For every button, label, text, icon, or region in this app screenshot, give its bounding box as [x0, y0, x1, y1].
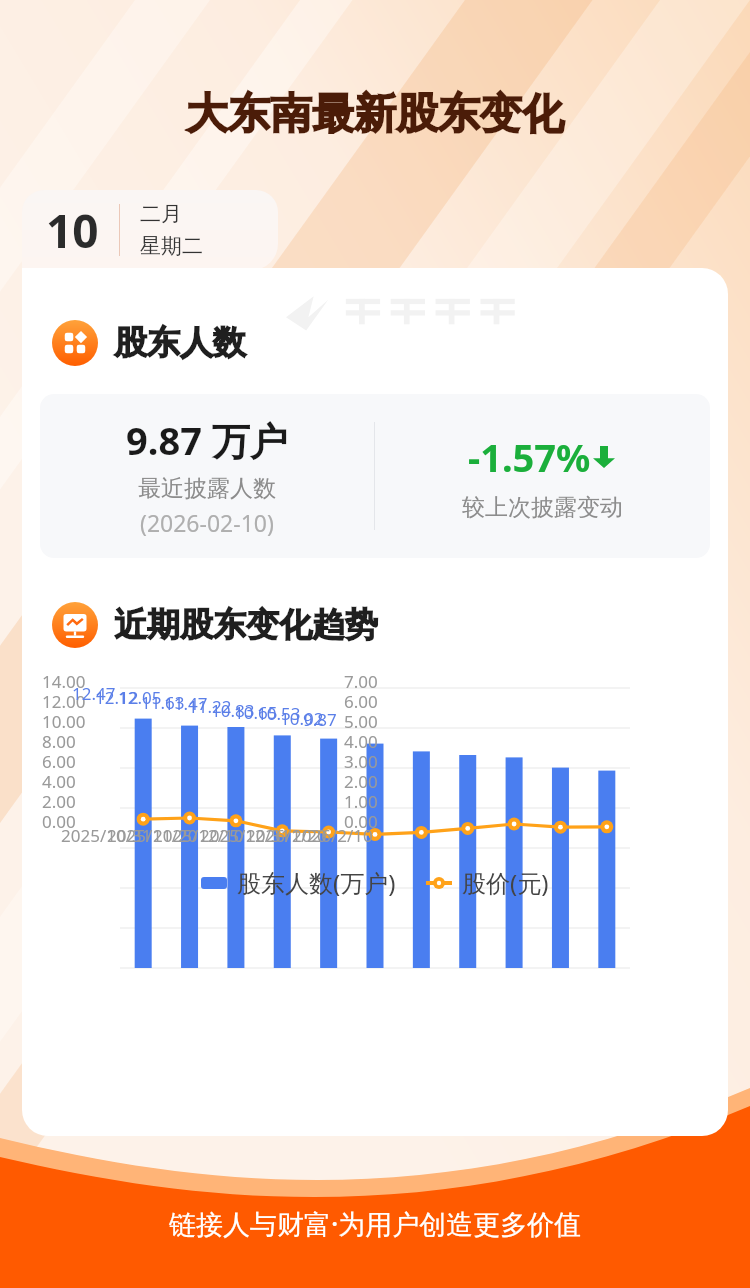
staticText: 股东人数: [114, 322, 246, 364]
staticText: 4.00: [344, 730, 378, 753]
staticText: 2025/10/31: [61, 824, 152, 847]
staticText: 11.47: [164, 692, 208, 715]
staticText: 10: [46, 199, 99, 262]
staticText: 10.65: [234, 701, 278, 724]
staticText: -1.57%: [468, 431, 591, 483]
staticText: 14.00: [42, 670, 86, 693]
staticText: 星期二: [140, 233, 203, 259]
staticText: 股价(元): [462, 866, 549, 899]
staticText: 2025/12/10: [153, 824, 244, 847]
staticText: 较上次披露变动: [462, 493, 623, 522]
staticText: 9.87 万户: [126, 414, 288, 466]
staticText: 9.87: [303, 708, 337, 731]
staticText: 股东人数(万户): [237, 866, 396, 899]
staticText: 0.00: [42, 810, 76, 833]
staticText: 12.47: [72, 682, 116, 705]
staticText: 6.00: [344, 690, 378, 713]
button[interactable]: 股东人数: [52, 320, 246, 366]
staticText: 1.00: [344, 790, 378, 813]
staticText: 11.63: [141, 691, 185, 714]
staticText: 10.83: [211, 699, 255, 722]
staticText: 2.00: [344, 770, 378, 793]
staticText: 链接人与财富·为用户创造更多价值: [169, 1205, 582, 1242]
staticText: 2026/1/20: [246, 824, 327, 847]
staticText: 2025/12/31: [200, 824, 291, 847]
staticText: 2026/2/10: [292, 824, 373, 847]
staticText: 10.53: [257, 702, 301, 725]
staticText: 2.00: [42, 790, 76, 813]
button[interactable]: 9.87 万户: [40, 394, 710, 558]
staticText: 11.22: [188, 695, 232, 718]
staticText: 4.00: [42, 770, 76, 793]
staticText: 近期股东变化趋势: [114, 604, 378, 646]
staticText: 10.00: [42, 710, 86, 733]
staticText: 0.00: [344, 810, 378, 833]
staticText: 12.00: [42, 690, 86, 713]
staticText: 二月: [140, 201, 182, 227]
staticText: 大东南最新股东变化: [0, 88, 750, 141]
button[interactable]: 近期股东变化趋势: [52, 602, 378, 648]
staticText: 最近披露人数: [138, 474, 276, 503]
other: 近期股东变化趋势: [52, 602, 98, 648]
staticText: 6.00: [42, 750, 76, 773]
staticText: 3.00: [344, 750, 378, 773]
staticText: (2026-02-10): [140, 507, 274, 538]
staticText: 5.00: [344, 710, 378, 733]
staticText: 12.05: [118, 686, 162, 709]
staticText: 8.00: [42, 730, 76, 753]
staticText: 2025/11/20: [107, 824, 198, 847]
staticText: 10.02: [280, 707, 324, 730]
other: 股东人数: [52, 320, 98, 366]
staticText: 7.00: [344, 670, 378, 693]
staticText: 12.12: [95, 686, 139, 709]
